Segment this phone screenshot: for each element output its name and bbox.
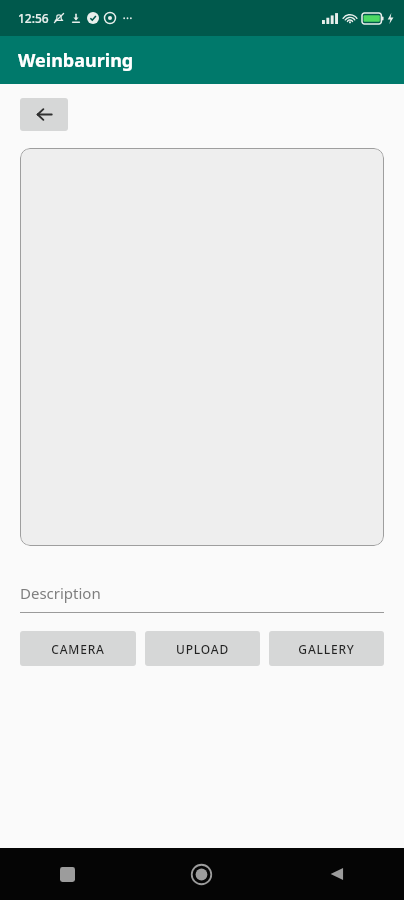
button[interactable]: Back — [269, 848, 404, 900]
staticText: Description — [20, 583, 101, 603]
staticText: GALLERY — [298, 641, 355, 657]
button[interactable]: GALLERY — [269, 631, 384, 666]
button[interactable]: Recents — [0, 848, 134, 900]
staticText: UPLOAD — [176, 641, 229, 657]
button[interactable]: UPLOAD — [145, 631, 260, 666]
button[interactable]: CAMERA — [20, 631, 136, 666]
staticText: 12:56 — [18, 10, 49, 26]
button[interactable]: Description — [20, 583, 384, 613]
button[interactable]: Back — [20, 98, 68, 131]
staticText: Weinbauring — [18, 48, 134, 73]
button[interactable]: Selected image preview — [20, 148, 384, 546]
button[interactable]: Home — [134, 848, 269, 900]
staticText: CAMERA — [51, 641, 105, 657]
